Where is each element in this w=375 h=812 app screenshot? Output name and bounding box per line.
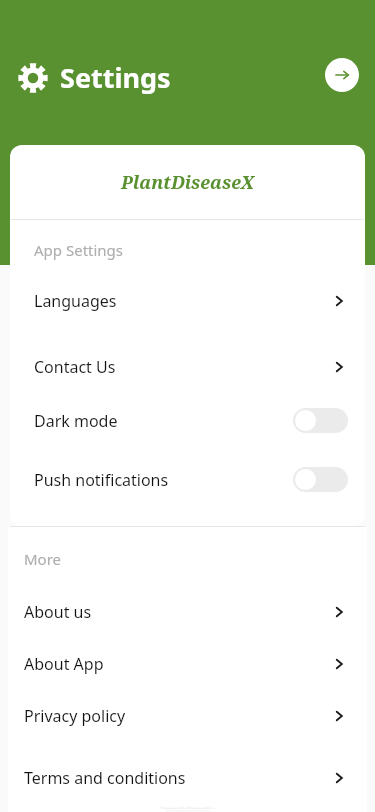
staticText: Contact Us: [34, 356, 331, 378]
staticText: Push notifications: [34, 469, 293, 491]
button[interactable]: Toggle: [293, 408, 348, 433]
button[interactable]: Terms and conditions: [8, 759, 367, 797]
staticText: App Settings: [34, 240, 124, 260]
staticText: Terms and conditions: [24, 767, 331, 789]
button[interactable]: Privacy policy: [8, 697, 367, 735]
staticText: About us: [24, 601, 331, 623]
staticText: Dark mode: [34, 410, 293, 432]
staticText: Privacy policy: [24, 705, 331, 727]
button[interactable]: Toggle: [293, 467, 348, 492]
button[interactable]: Next: [325, 58, 359, 92]
button[interactable]: Dark mode: [10, 408, 365, 433]
button[interactable]: Contact Us: [10, 348, 365, 386]
button[interactable]: About us: [8, 593, 367, 631]
button[interactable]: Push notifications: [10, 467, 365, 492]
staticText: Languages: [34, 290, 331, 312]
button[interactable]: About App: [8, 645, 367, 683]
staticText: PlantDiseaseX: [121, 170, 254, 195]
staticText: Settings: [60, 59, 171, 96]
button[interactable]: Languages: [10, 282, 365, 320]
staticText: More: [24, 549, 62, 569]
staticText: About App: [24, 653, 331, 675]
